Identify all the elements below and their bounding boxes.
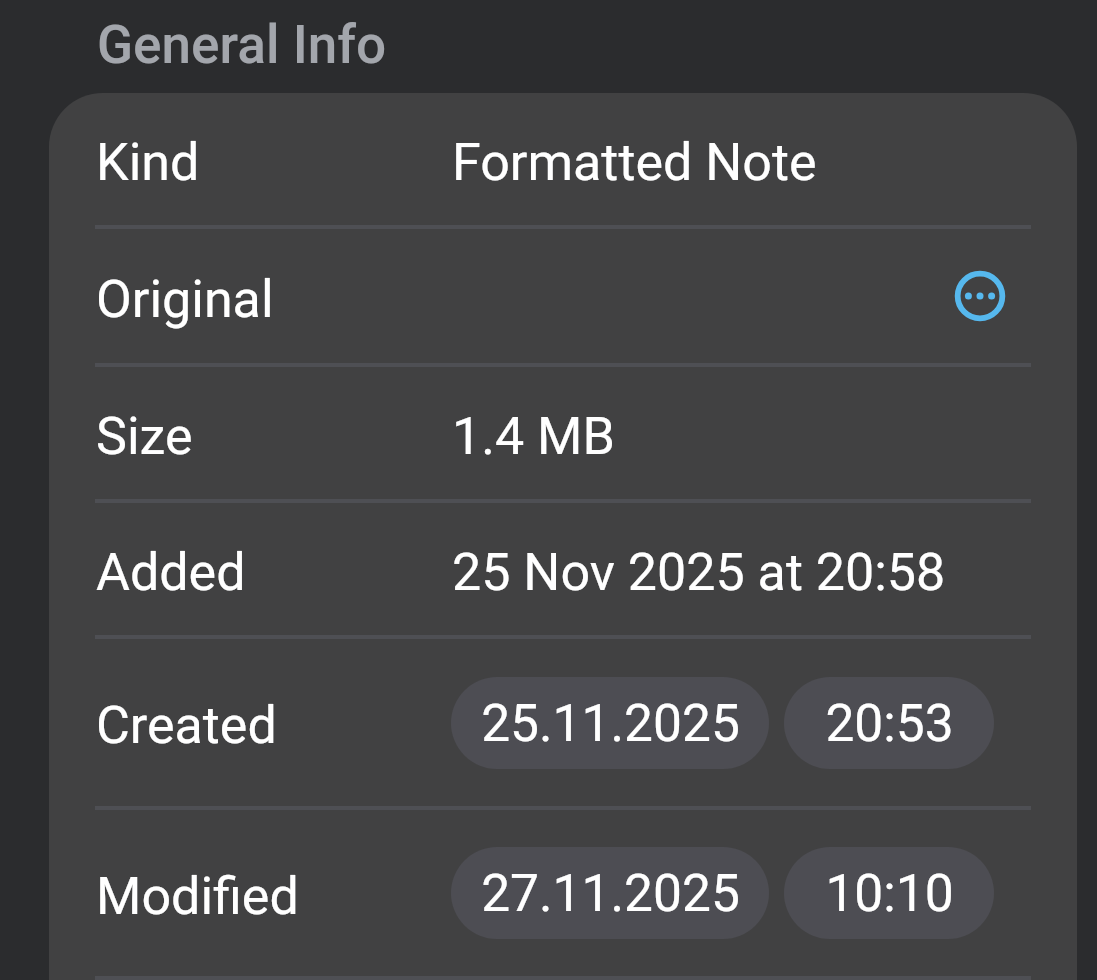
button[interactable]: Added [49, 503, 1077, 635]
button[interactable]: 20:53 [784, 677, 994, 769]
button[interactable]: 27.11.2025 [451, 847, 769, 939]
button[interactable]: 25.11.2025 [451, 677, 769, 769]
button[interactable]: Kind [49, 93, 1077, 225]
staticText: 25 Nov 2025 at 20:58 [452, 542, 946, 603]
staticText: 10:10 [825, 863, 954, 923]
staticText: 20:53 [825, 693, 954, 753]
staticText: Kind [96, 132, 200, 193]
staticText: 27.11.2025 [481, 863, 740, 923]
staticText: Size [96, 406, 193, 467]
button[interactable]: More options [942, 258, 1018, 334]
staticText: Added [96, 542, 246, 603]
staticText: 1.4 MB [452, 406, 615, 467]
button[interactable]: Modified [49, 810, 1077, 976]
staticText: Formatted Note [452, 132, 817, 193]
staticText: 25.11.2025 [481, 693, 740, 753]
button[interactable]: Created [49, 639, 1077, 806]
staticText: Modified [96, 866, 299, 927]
button[interactable]: 10:10 [784, 847, 994, 939]
button[interactable]: Size [49, 367, 1077, 499]
staticText: Created [96, 695, 277, 756]
staticText: General Info [97, 14, 387, 76]
staticText: Original [96, 269, 274, 330]
button[interactable]: Original [49, 229, 1077, 363]
